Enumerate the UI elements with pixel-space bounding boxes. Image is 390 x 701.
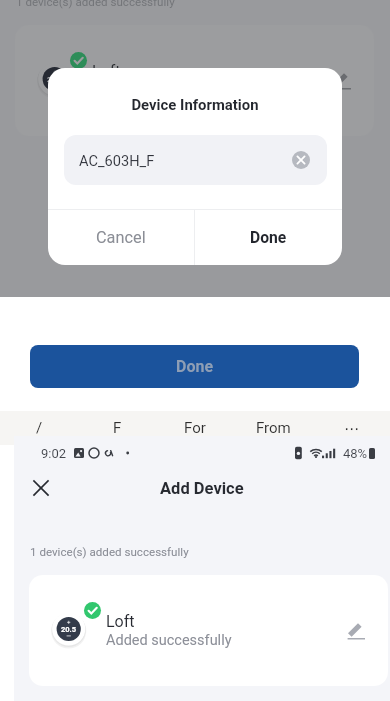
staticText: ⋯ [344, 420, 359, 437]
button[interactable]: F [78, 411, 156, 445]
staticText: 20.5 [61, 625, 77, 634]
staticText: From [256, 419, 291, 437]
staticText: 1 device(s) added successfully [30, 545, 189, 559]
staticText: 20.5 [47, 75, 63, 84]
button[interactable]: Done [195, 209, 342, 265]
button[interactable]: Clear text [292, 151, 310, 169]
staticText: / [36, 419, 43, 437]
staticText: Device Information [48, 96, 342, 113]
button[interactable]: Edit device name [344, 618, 368, 642]
staticText: Cancel [96, 228, 146, 247]
staticText: Loft [106, 612, 135, 631]
button[interactable]: 20.5 [29, 575, 388, 686]
button[interactable]: ⋯ [312, 411, 390, 445]
staticText: Added successfully [106, 632, 232, 649]
button[interactable]: Done [30, 345, 359, 388]
button[interactable]: Cancel [48, 209, 194, 265]
button[interactable]: AC_603H_F [64, 135, 327, 185]
button[interactable]: 20.5 [15, 25, 374, 136]
staticText: Add Device [160, 479, 244, 498]
staticText: Done [250, 228, 287, 246]
button[interactable]: Edit device name [330, 68, 354, 92]
staticText: AC_603H_F [79, 152, 155, 169]
staticText: Loft [92, 62, 121, 81]
staticText: 1 device(s) added successfully [16, 0, 175, 9]
button[interactable]: For [156, 411, 234, 445]
staticText: 9:02 [41, 446, 67, 461]
button[interactable]: Close [28, 475, 54, 501]
staticText: Done [176, 357, 214, 376]
staticText: For [184, 419, 206, 437]
button[interactable]: From [234, 411, 312, 445]
staticText: F [113, 419, 122, 437]
staticText: 48% [343, 446, 368, 461]
button[interactable]: / [0, 411, 78, 445]
